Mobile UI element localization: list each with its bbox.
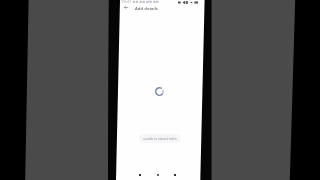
button[interactable]: Back	[135, 170, 145, 180]
button[interactable]: Recents	[170, 170, 180, 180]
staticText: Add details	[135, 5, 158, 11]
staticText: 10:41 ▪▪ ▪▪ ▪▪ ▪▪	[121, 0, 159, 4]
staticText: unable to extract video	[143, 137, 177, 141]
button[interactable]: Back	[120, 3, 131, 12]
button[interactable]: Home	[153, 170, 163, 180]
